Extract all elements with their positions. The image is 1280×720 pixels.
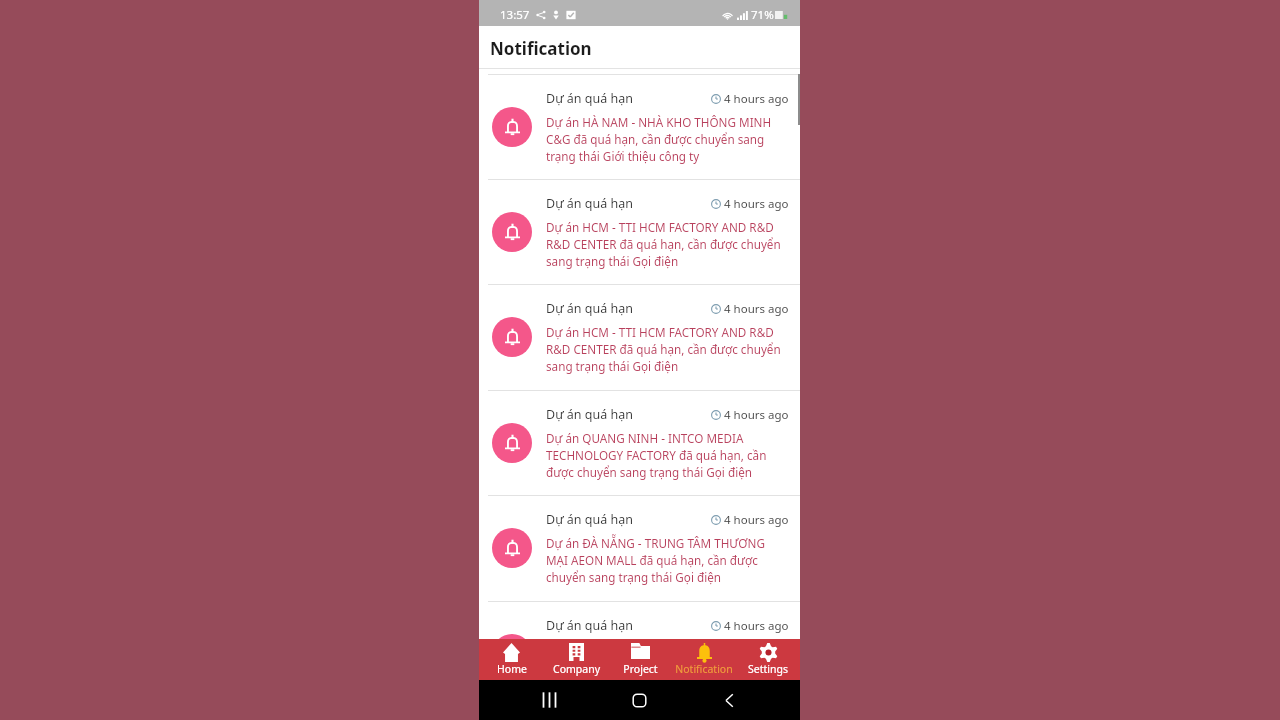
button[interactable]: Project	[608, 639, 672, 680]
button[interactable]: Back	[684, 680, 774, 720]
button[interactable]: Home	[594, 680, 684, 720]
staticText: Dự án HCM - TTI HCM FACTORY AND R&D R&D …	[546, 324, 784, 374]
button[interactable]: Company	[544, 639, 608, 680]
staticText: Notification	[490, 37, 592, 60]
button[interactable]: Recent apps	[505, 680, 594, 720]
button[interactable]: Dự án quá hạn	[479, 496, 800, 600]
staticText: Dự án quá hạn	[546, 300, 633, 317]
button[interactable]: Notification	[672, 639, 736, 680]
button[interactable]: Home	[479, 639, 544, 680]
staticText: Dự án quá hạn	[546, 406, 633, 423]
button[interactable]: Dự án quá hạn	[479, 180, 800, 284]
button[interactable]: Dự án quá hạn	[479, 602, 800, 639]
staticText: Dự án HCM - TTI HCM FACTORY AND R&D R&D …	[546, 219, 784, 269]
staticText: 4 hours ago	[724, 301, 789, 317]
staticText: Project	[623, 662, 658, 676]
staticText: 13:57	[500, 7, 530, 23]
staticText: Dự án quá hạn	[546, 617, 633, 634]
button[interactable]: Settings	[736, 639, 800, 680]
staticText: Dự án quá hạn	[546, 511, 633, 528]
staticText: Dự án quá hạn	[546, 195, 633, 212]
staticText: Home	[497, 662, 527, 676]
staticText: 4 hours ago	[724, 407, 789, 423]
staticText: Dự án ĐÀ NẴNG - TRUNG TÂM THƯƠNG MẠI AEO…	[546, 535, 784, 585]
staticText: Dự án quá hạn	[546, 90, 633, 107]
staticText: Dự án QUANG NINH - INTCO MEDIA TECHNOLOG…	[546, 430, 784, 480]
button[interactable]: Dự án quá hạn	[479, 391, 800, 495]
staticText: Dự án HÀ NAM - NHÀ KHO THÔNG MINH C&G đã…	[546, 114, 784, 164]
staticText: 4 hours ago	[724, 91, 789, 107]
staticText: 71%	[751, 7, 774, 23]
staticText: Notification	[675, 662, 733, 676]
staticText: 4 hours ago	[724, 196, 789, 212]
button[interactable]: Dự án quá hạn	[479, 75, 800, 179]
staticText: Company	[553, 662, 600, 676]
staticText: 4 hours ago	[724, 512, 789, 528]
staticText: Settings	[748, 662, 788, 676]
staticText: 4 hours ago	[724, 618, 789, 634]
button[interactable]: Dự án quá hạn	[479, 285, 800, 389]
